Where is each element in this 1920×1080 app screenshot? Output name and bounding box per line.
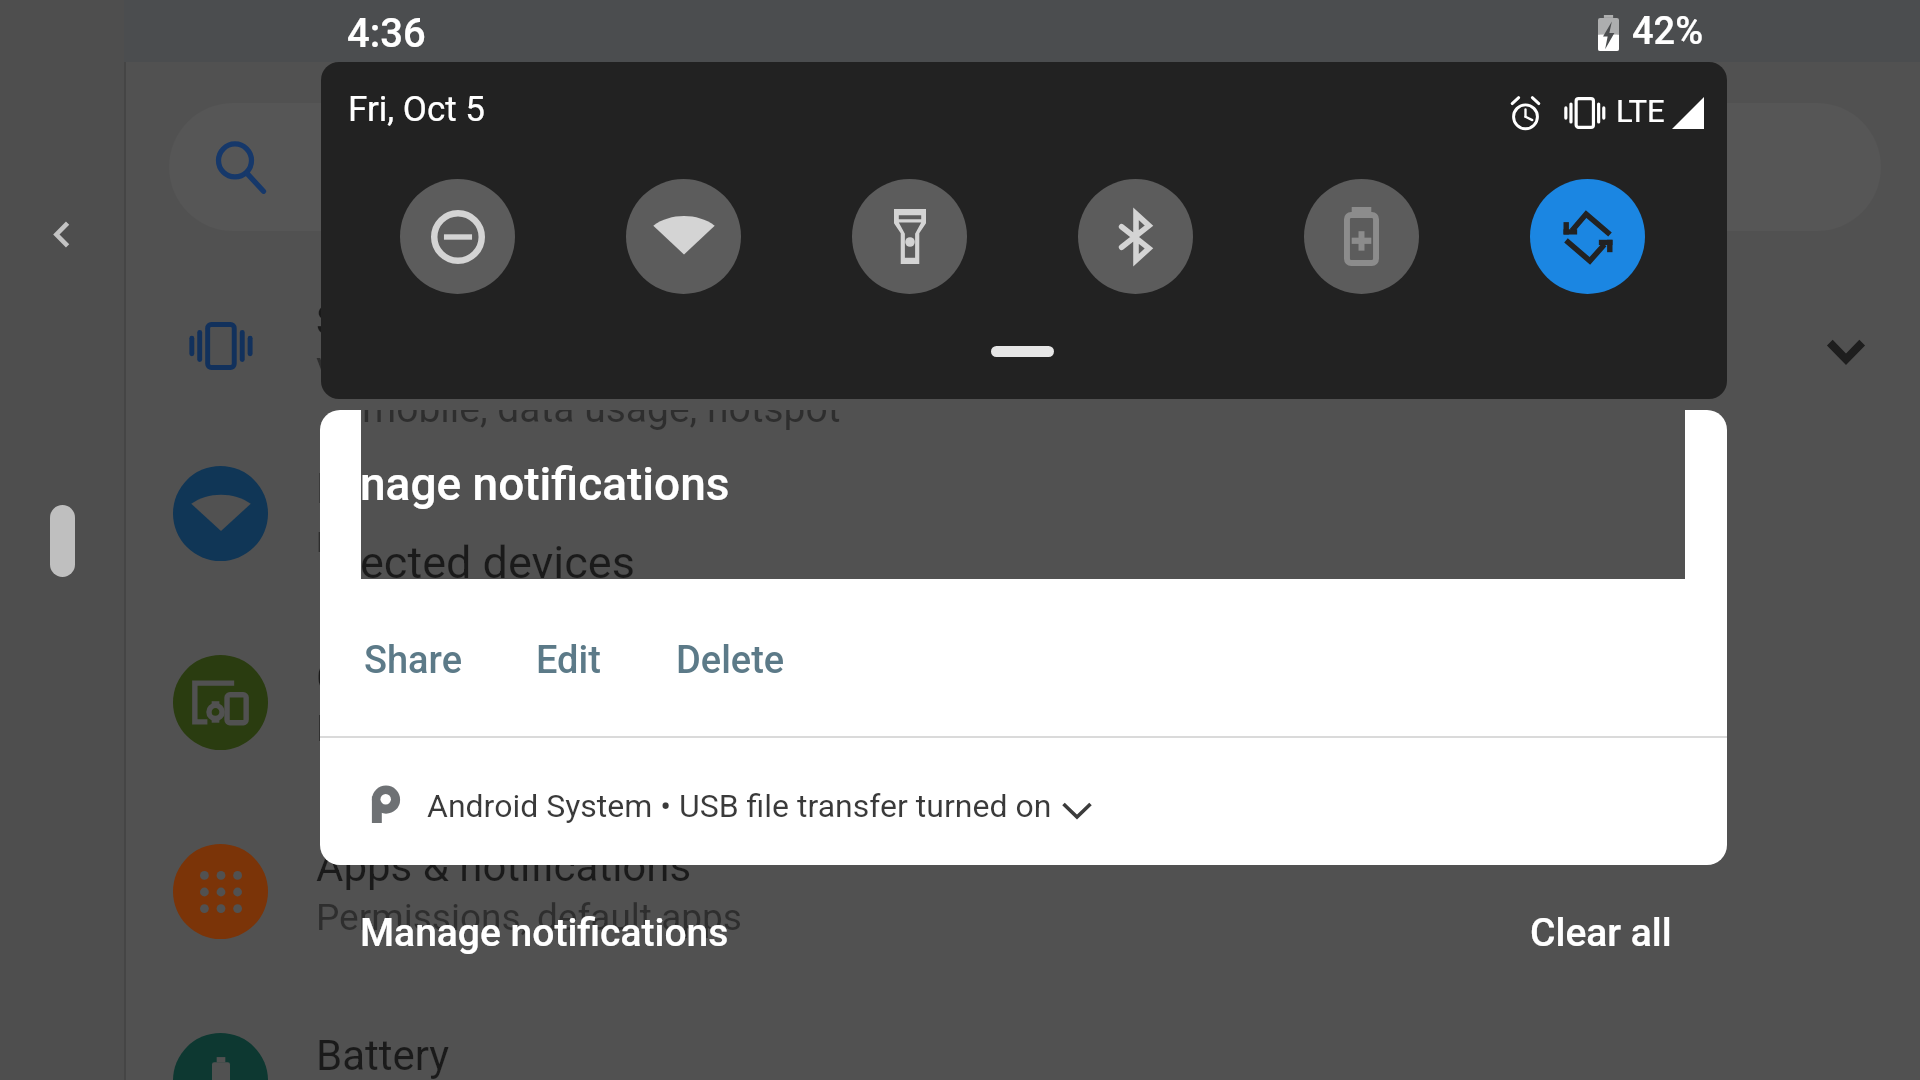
staticText: Android System • USB file transfer turne… bbox=[427, 787, 1052, 825]
staticText: Battery bbox=[316, 1031, 450, 1080]
staticText: Manage notifications bbox=[360, 910, 729, 956]
button[interactable]: Delete bbox=[672, 632, 789, 689]
staticText: LTE bbox=[1616, 93, 1665, 129]
staticText: Clear all bbox=[1530, 910, 1672, 956]
button[interactable]: Wi-Fi bbox=[626, 179, 741, 294]
button[interactable]: Manage notifications bbox=[360, 910, 729, 956]
button[interactable] bbox=[126, 254, 1920, 438]
staticText: nage notifications bbox=[360, 457, 730, 511]
button[interactable]: Bluetooth bbox=[1078, 179, 1193, 294]
button[interactable] bbox=[126, 611, 1920, 795]
staticText: Share bbox=[364, 638, 463, 683]
staticText: Apps & notifications bbox=[316, 842, 692, 891]
staticText: Network & internet bbox=[316, 464, 663, 513]
button[interactable]: Clear all bbox=[1530, 910, 1672, 956]
staticText: Fri, Oct 5 bbox=[348, 89, 486, 130]
staticText: ected devices bbox=[360, 536, 635, 589]
staticText: 42% bbox=[1632, 9, 1704, 54]
staticText: Connected devices bbox=[316, 653, 671, 702]
staticText: mobile, data usage, hotspot bbox=[316, 518, 770, 561]
staticText: Sound bbox=[316, 296, 435, 345]
button[interactable]: Flashlight bbox=[852, 179, 967, 294]
button[interactable]: Battery Saver bbox=[1304, 179, 1419, 294]
staticText: mobile, data usage, hotspot bbox=[362, 410, 841, 432]
staticText: Volume, vibration, Do Not Disturb bbox=[316, 350, 859, 393]
button[interactable] bbox=[126, 422, 1920, 606]
button[interactable]: Do Not Disturb bbox=[400, 179, 515, 294]
staticText: Permissions, default apps bbox=[316, 896, 742, 939]
button[interactable]: Auto-rotate bbox=[1530, 179, 1645, 294]
button[interactable]: Search settings bbox=[169, 103, 1881, 231]
button[interactable]: Share bbox=[360, 632, 467, 689]
button[interactable] bbox=[126, 800, 1920, 984]
staticText: Edit bbox=[536, 638, 601, 683]
button[interactable]: Edit bbox=[532, 632, 605, 689]
button[interactable] bbox=[126, 989, 1920, 1080]
button[interactable]: Screenshot notification bbox=[320, 410, 1727, 736]
staticText: Delete bbox=[676, 638, 785, 683]
button[interactable]: Back bbox=[32, 204, 92, 264]
button[interactable]: Expand notification bbox=[320, 738, 1727, 865]
staticText: 4:36 bbox=[347, 10, 426, 57]
staticText: Bluetooth, cast bbox=[316, 707, 562, 750]
